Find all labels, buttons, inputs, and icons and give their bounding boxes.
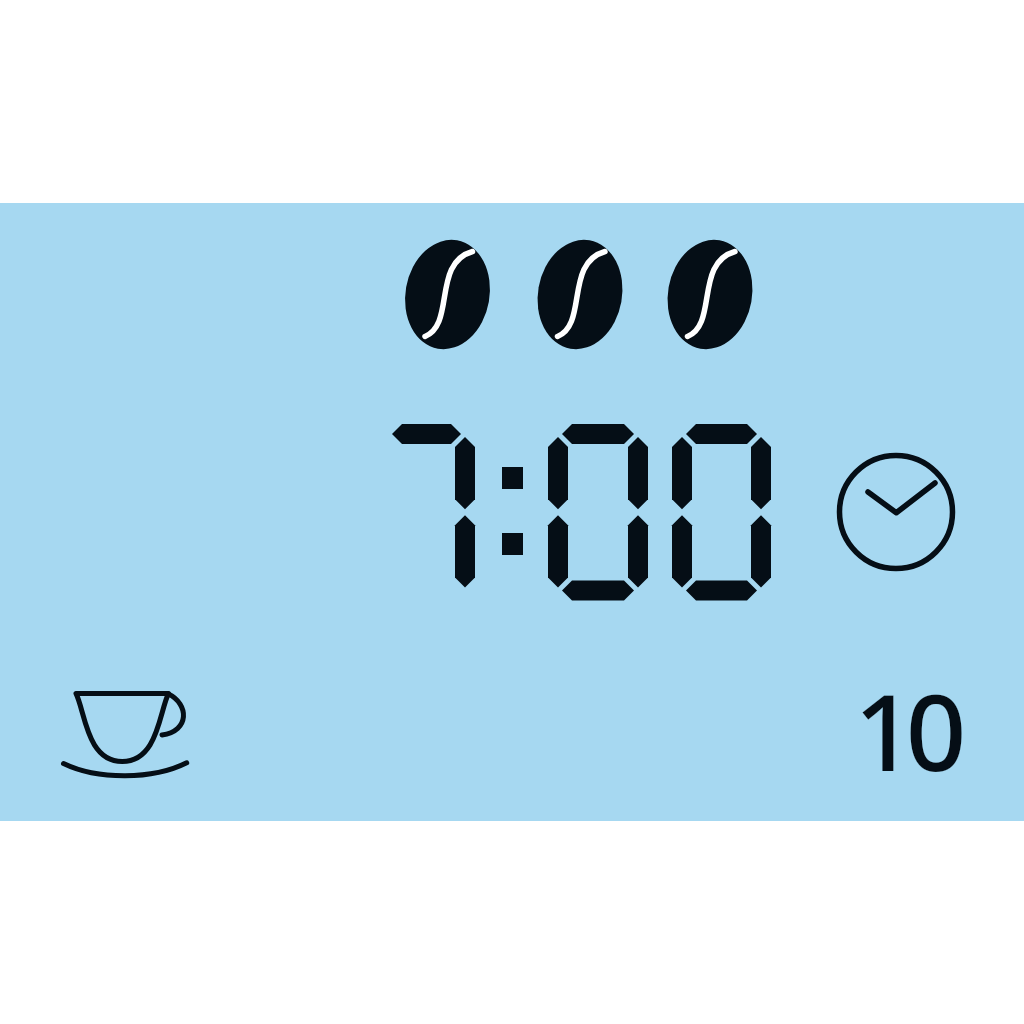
- button[interactable]: 10: [854, 658, 958, 802]
- button[interactable]: Cup: [52, 680, 202, 790]
- button[interactable]: Coffee strength: 3 beans: [398, 232, 762, 358]
- button[interactable]: Timer: [832, 448, 960, 576]
- button[interactable]: Brew time 7:00: [370, 412, 780, 612]
- staticText: 10: [854, 658, 958, 802]
